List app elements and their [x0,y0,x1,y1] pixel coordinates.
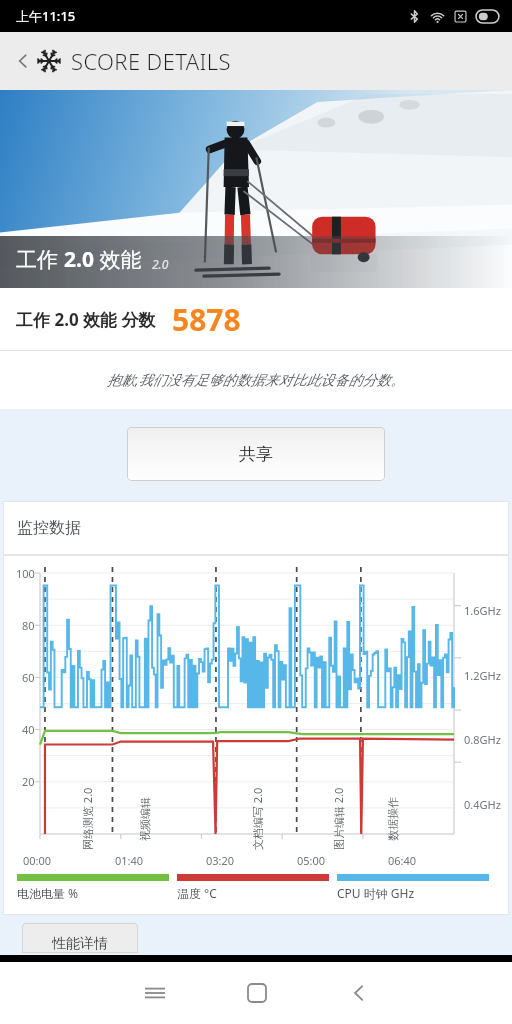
staticText: 文档编写 2.0 [250,787,265,850]
staticText: 性能详情 [52,935,108,953]
staticText: 电池电量 % [17,885,79,901]
button[interactable]: Home [206,962,308,1024]
staticText: 05:00 [297,853,326,868]
staticText: 06:40 [388,853,417,868]
staticText: 视频编辑 [138,797,152,841]
staticText: 温度 °C [177,885,217,901]
button[interactable]: Menu [103,962,206,1024]
staticText: 100 [16,566,35,581]
staticText: 网络测览 2.0 [80,787,95,850]
staticText: 60 [22,670,35,685]
staticText: 1.2GHz [464,668,501,683]
staticText: 5878 [172,299,241,340]
staticText: 40 [22,722,35,737]
staticText: CPU 时钟 GHz [337,885,415,901]
staticText: 0.4GHz [464,797,501,812]
staticText: 1.6GHz [464,603,501,618]
button[interactable]: 共享 [127,427,385,481]
staticText: 数据操作 [386,797,400,841]
staticText: 0.8GHz [464,732,501,747]
button[interactable]: Back [10,48,36,74]
staticText: 抱歉,我们没有足够的数据来对比此设备的分数。 [107,370,405,389]
staticText: 工作 2.0 效能 分数 [16,308,156,331]
staticText: 监控数据 [17,518,81,538]
staticText: 共享 [239,444,273,465]
staticText: 效能 [94,245,142,274]
button[interactable]: Back [308,962,410,1024]
staticText: 上午11:15 [16,7,76,25]
staticText: 03:20 [206,853,235,868]
staticText: 20 [22,774,35,789]
staticText: 01:40 [115,853,144,868]
staticText: SCORE DETAILS [71,46,231,76]
staticText: 2.0 [64,245,94,274]
staticText: 图片编辑 2.0 [331,787,346,850]
staticText: 00:00 [23,853,52,868]
staticText: 2.0 [152,256,169,272]
staticText: 80 [22,618,35,633]
button[interactable]: 性能详情 [22,923,138,953]
staticText: 工作 [16,245,64,274]
